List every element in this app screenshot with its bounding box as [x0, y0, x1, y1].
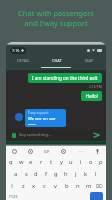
button[interactable]: keyboard tool 4	[55, 146, 72, 156]
staticText: q	[9, 158, 13, 166]
button[interactable]: keyboard tool 3	[38, 146, 55, 156]
button[interactable]: CHAT	[40, 55, 73, 66]
staticText: GIF	[44, 149, 50, 154]
staticText: v	[54, 182, 57, 190]
button[interactable]: b	[61, 180, 72, 192]
button[interactable]: Enter	[90, 192, 103, 200]
staticText: k	[84, 170, 88, 178]
button[interactable]: ?123	[6, 192, 20, 200]
staticText: m	[86, 182, 92, 190]
staticText: I am standing on the third exit	[32, 75, 98, 81]
staticText: b	[65, 182, 69, 190]
button[interactable]: Backspace	[94, 180, 106, 192]
button[interactable]: Shift	[6, 180, 18, 192]
button[interactable]: r	[36, 156, 46, 168]
button[interactable]: MAP	[73, 55, 106, 66]
button[interactable]: o	[86, 156, 96, 168]
staticText: g	[54, 170, 58, 178]
staticText: z	[22, 182, 25, 190]
staticText: Chat with passengers	[18, 8, 94, 18]
button[interactable]: g	[51, 168, 61, 180]
button[interactable]: keyboard tool 2	[22, 146, 38, 156]
staticText: x	[32, 182, 36, 190]
staticText: o	[89, 158, 93, 166]
button[interactable]: q	[6, 156, 16, 168]
button[interactable]: v	[50, 180, 61, 192]
staticText: w	[19, 158, 24, 166]
button[interactable]: n	[72, 180, 83, 192]
staticText: ⌦	[96, 183, 104, 189]
button[interactable]: u	[66, 156, 76, 168]
button[interactable]: Send	[93, 132, 100, 138]
staticText: We are on our way	[28, 116, 63, 125]
staticText: I'way support	[28, 111, 49, 115]
button[interactable]: s	[21, 168, 31, 180]
button[interactable]: x	[28, 180, 39, 192]
button[interactable]: DETAIL	[6, 55, 40, 66]
staticText: u	[69, 158, 73, 166]
button[interactable]: m	[83, 180, 94, 192]
button[interactable]: keyboard tool 5	[72, 146, 89, 156]
staticText: ?123	[9, 194, 18, 199]
staticText: t	[50, 158, 53, 166]
button[interactable]: I am standing on the third exit	[28, 73, 102, 83]
button[interactable]: e	[26, 156, 36, 168]
staticText: j	[75, 170, 77, 178]
staticText: MAP	[85, 58, 94, 63]
button[interactable]: Attach	[12, 133, 16, 138]
button[interactable]: a	[11, 168, 21, 180]
button[interactable]: l	[91, 168, 101, 180]
button[interactable]: c	[39, 180, 50, 192]
button[interactable]: keyboard tool 1	[6, 146, 22, 156]
button[interactable]: p	[96, 156, 106, 168]
staticText: s	[25, 170, 28, 178]
staticText: DETAIL	[17, 58, 30, 63]
staticText: e	[29, 158, 33, 166]
staticText: CHAT	[52, 58, 62, 63]
staticText: r	[40, 158, 43, 166]
staticText: Say something...	[19, 132, 52, 138]
button[interactable]: keyboard tool 6	[89, 146, 106, 156]
staticText: Hello!	[86, 93, 98, 99]
button[interactable]: d	[31, 168, 41, 180]
staticText: d	[34, 170, 38, 178]
button[interactable]: y	[56, 156, 66, 168]
staticText: l	[95, 170, 97, 178]
staticText: 2:16 PM	[89, 84, 102, 89]
staticText: f	[45, 170, 47, 178]
staticText: 7:16	[12, 48, 20, 53]
staticText: n	[76, 182, 80, 190]
staticText: and I'way support	[24, 18, 88, 28]
staticText: i	[80, 158, 82, 166]
staticText: p	[99, 158, 103, 166]
staticText: y	[60, 158, 63, 166]
button[interactable]: k	[81, 168, 91, 180]
staticText: c	[43, 182, 46, 190]
button[interactable]: h	[61, 168, 71, 180]
staticText: h	[64, 170, 68, 178]
button[interactable]: w	[16, 156, 26, 168]
button[interactable]: i	[76, 156, 86, 168]
button[interactable]: Hello!	[81, 91, 102, 101]
staticText: a	[14, 170, 18, 178]
staticText: ⋯	[79, 149, 83, 154]
button[interactable]: j	[71, 168, 81, 180]
button[interactable]: f	[41, 168, 51, 180]
staticText: ⇧	[10, 183, 15, 189]
button[interactable]: t	[46, 156, 56, 168]
button[interactable]: z	[18, 180, 28, 192]
button[interactable]: I'way support	[25, 109, 66, 127]
